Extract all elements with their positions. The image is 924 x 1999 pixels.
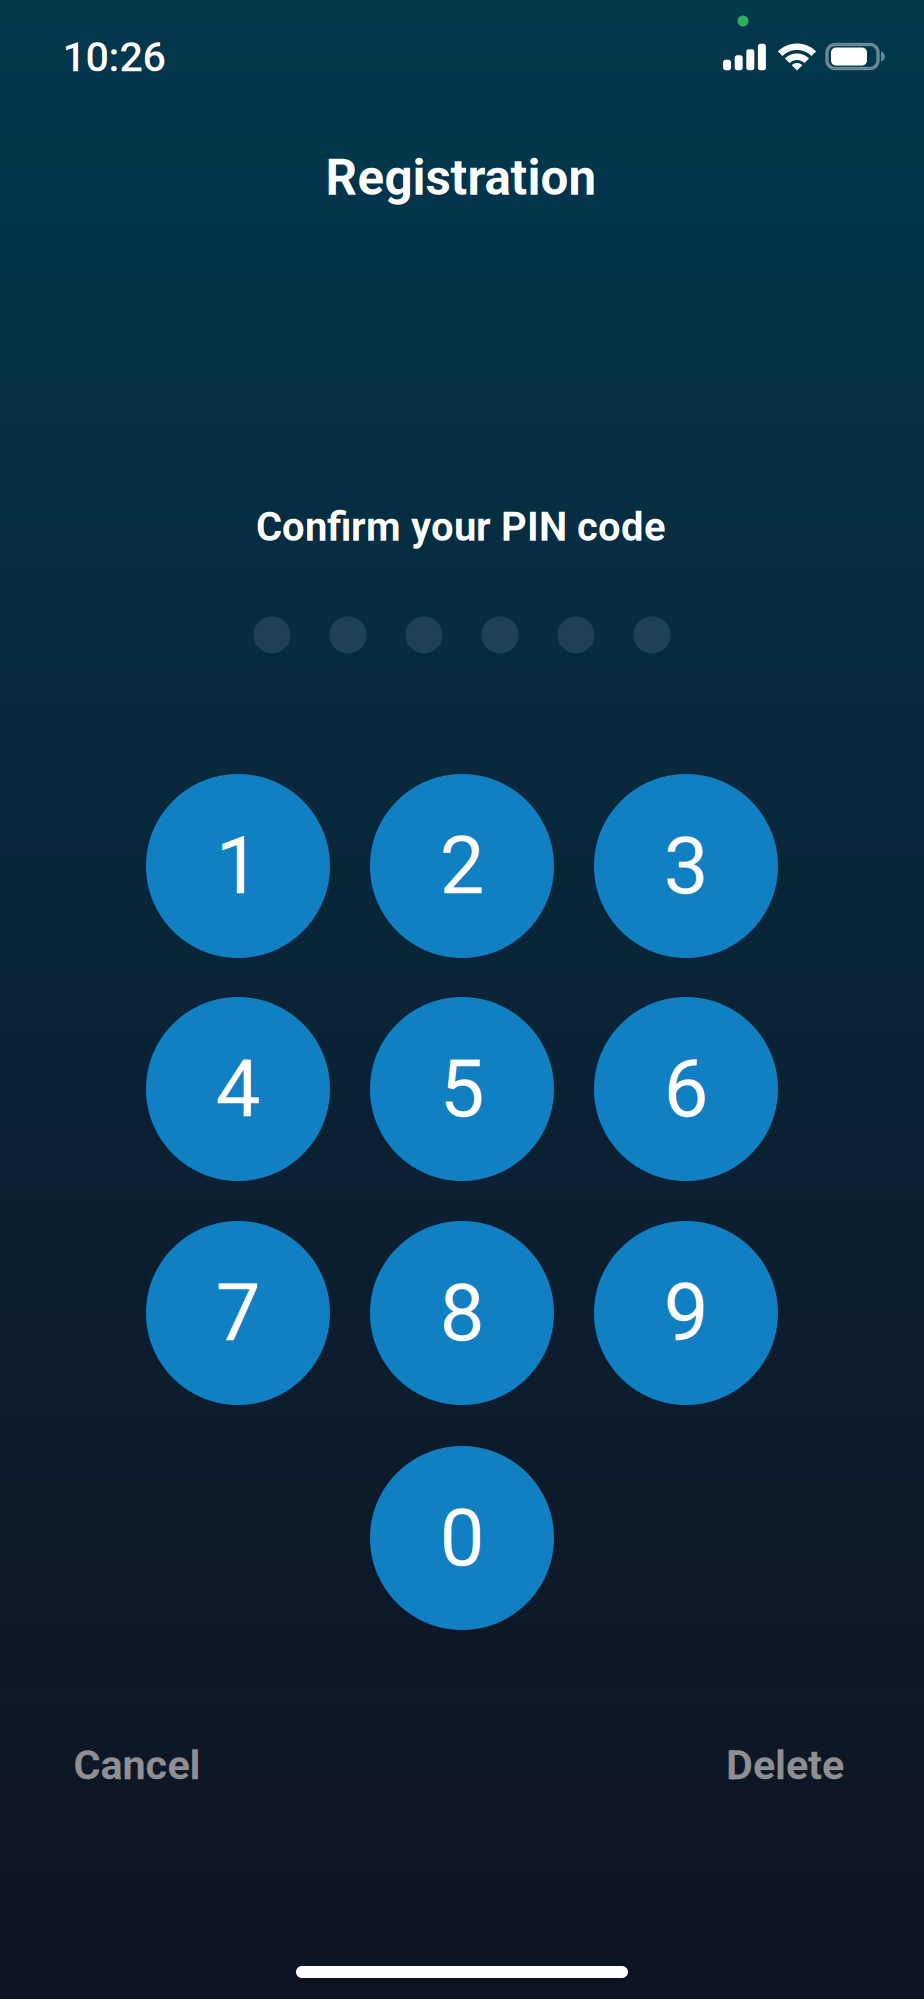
button[interactable]: Cancel	[45, 1719, 229, 1811]
staticText: 9	[663, 1266, 708, 1360]
staticText: Registration	[325, 149, 596, 207]
staticText: 10:26	[62, 33, 165, 81]
button[interactable]: 1	[146, 774, 330, 958]
staticText: 0	[439, 1491, 484, 1585]
button[interactable]: 9	[594, 1221, 778, 1405]
button[interactable]: 3	[594, 774, 778, 958]
staticText: 4	[215, 1042, 260, 1136]
staticText: 7	[215, 1266, 260, 1360]
staticText: 8	[439, 1266, 484, 1360]
button[interactable]: 2	[370, 774, 554, 958]
staticText: Confirm your PIN code	[256, 504, 666, 550]
staticText: Delete	[726, 1741, 844, 1789]
button[interactable]: 7	[146, 1221, 330, 1405]
staticText: 1	[215, 819, 260, 913]
button[interactable]: 4	[146, 997, 330, 1181]
button[interactable]: Delete	[693, 1719, 877, 1811]
staticText: 3	[663, 819, 708, 913]
button[interactable]: 5	[370, 997, 554, 1181]
button[interactable]: 0	[370, 1446, 554, 1630]
staticText: 2	[439, 819, 484, 913]
staticText: Cancel	[73, 1741, 200, 1789]
staticText: 6	[663, 1042, 708, 1136]
button[interactable]: 8	[370, 1221, 554, 1405]
staticText: 5	[439, 1042, 484, 1136]
button[interactable]: 6	[594, 997, 778, 1181]
